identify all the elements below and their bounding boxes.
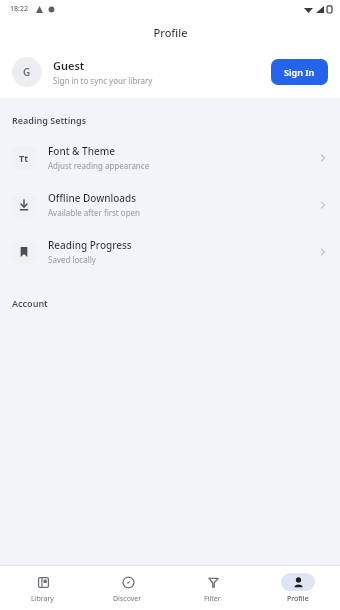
- staticText: Account: [12, 297, 48, 309]
- staticText: Library: [31, 594, 54, 604]
- staticText: Filter: [204, 594, 221, 604]
- staticText: Tt: [19, 152, 29, 164]
- button[interactable]: Filter: [170, 566, 255, 610]
- staticText: G: [23, 65, 31, 79]
- button[interactable]: G: [0, 46, 340, 98]
- staticText: Guest: [53, 58, 85, 73]
- staticText: 18:22: [10, 4, 28, 14]
- staticText: Font & Theme: [48, 144, 115, 158]
- button[interactable]: Reading Progress: [0, 228, 340, 275]
- staticText: Offline Downloads: [48, 191, 137, 205]
- staticText: Profile: [153, 25, 188, 40]
- button[interactable]: Offline Downloads: [0, 181, 340, 228]
- staticText: Available after first open: [48, 207, 141, 218]
- staticText: Reading Settings: [12, 114, 87, 126]
- staticText: Discover: [113, 594, 142, 604]
- button[interactable]: Profile: [255, 566, 340, 610]
- staticText: Sign in to sync your library: [53, 75, 153, 86]
- button[interactable]: Tt: [0, 134, 340, 181]
- staticText: Reading Progress: [48, 238, 132, 252]
- staticText: Profile: [287, 594, 309, 604]
- staticText: Saved locally: [48, 254, 96, 265]
- button[interactable]: Discover: [85, 566, 170, 610]
- button[interactable]: Library: [0, 566, 85, 610]
- button[interactable]: Sign In: [271, 59, 328, 85]
- staticText: Sign In: [284, 66, 315, 78]
- staticText: Adjust reading appearance: [48, 160, 150, 171]
